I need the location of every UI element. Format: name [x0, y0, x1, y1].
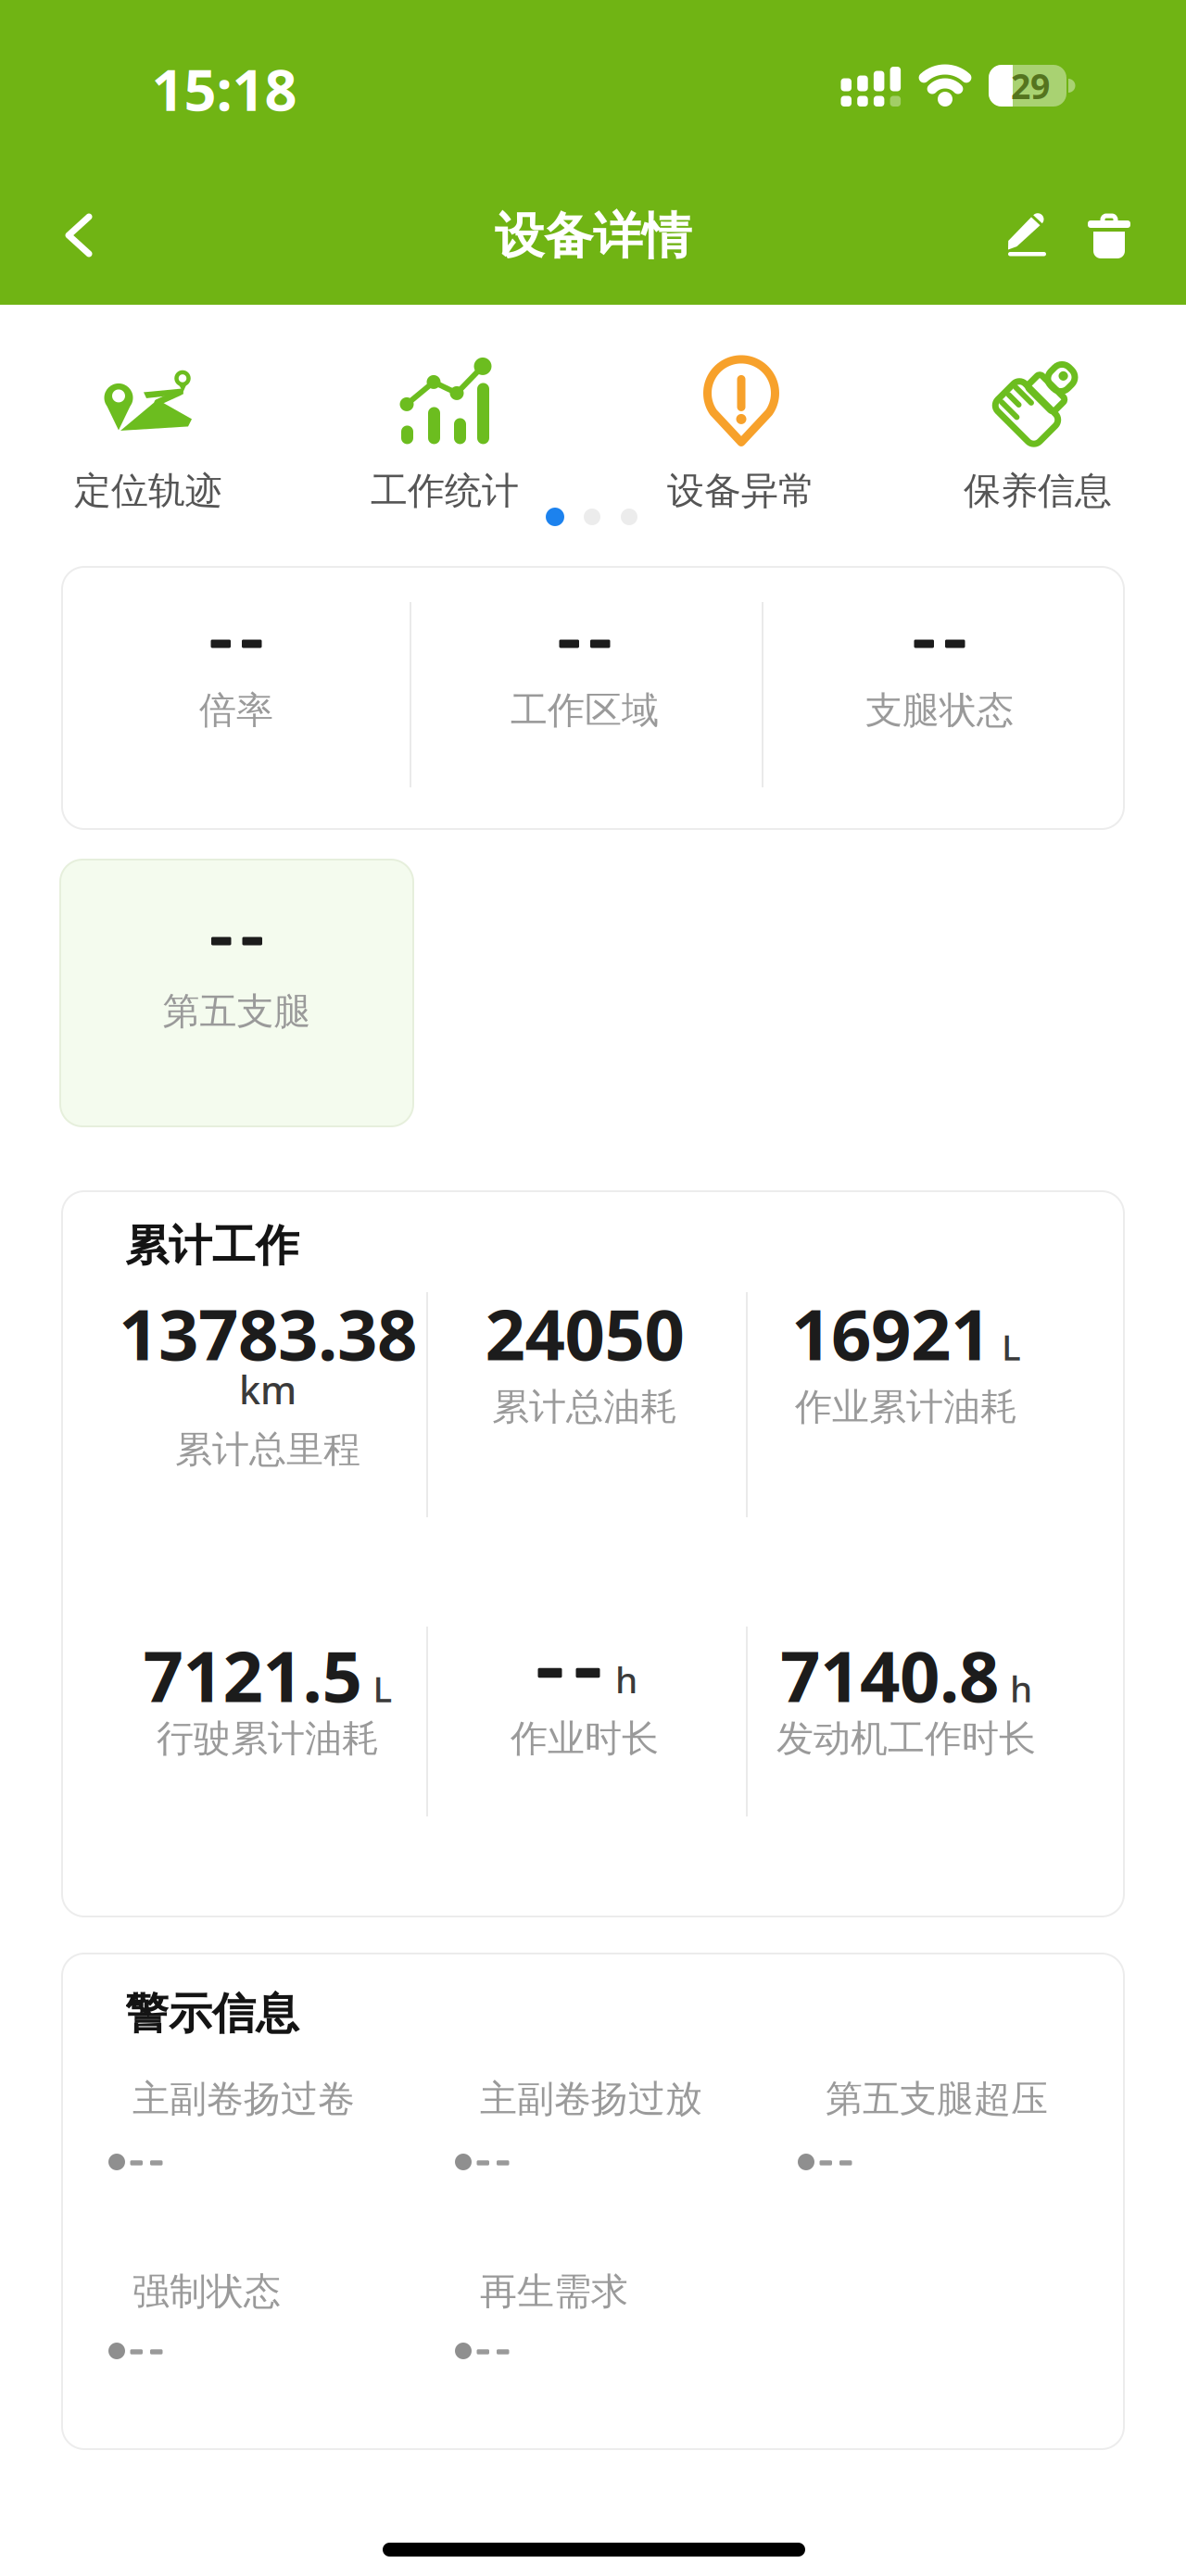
staticText: km [239, 1364, 296, 1415]
staticText: 设备异常 [667, 468, 815, 514]
staticText: 累计总里程 [175, 1427, 360, 1472]
staticText: 15:18 [151, 51, 297, 127]
staticText: L [1002, 1323, 1021, 1370]
staticText: h [615, 1656, 637, 1703]
staticText: 13783.38 [119, 1286, 417, 1380]
staticText: 第五支腿超压 [826, 2076, 1048, 2122]
button[interactable]: Edit [1001, 208, 1056, 264]
staticText: 强制状态 [132, 2269, 281, 2314]
staticText: 7140.8 [780, 1628, 999, 1721]
staticText: h [1010, 1665, 1032, 1712]
staticText: 作业累计油耗 [795, 1384, 1017, 1430]
staticText: L [373, 1665, 392, 1712]
button[interactable]: Delete [1081, 208, 1137, 264]
staticText: 设备详情 [495, 206, 691, 266]
staticText: 作业时长 [511, 1716, 659, 1761]
staticText: 警示信息 [125, 1987, 299, 2040]
staticText: 工作统计 [371, 468, 519, 514]
staticText: 累计总油耗 [492, 1384, 677, 1430]
staticText: 7121.5 [143, 1628, 362, 1721]
staticText: 支腿状态 [865, 688, 1014, 733]
staticText: 主副卷扬过放 [480, 2076, 702, 2122]
staticText: 16921 [791, 1286, 990, 1380]
staticText: 累计工作 [125, 1219, 299, 1272]
staticText: 24050 [485, 1286, 684, 1380]
button[interactable]: 设备异常 [594, 355, 889, 514]
staticText: 工作区域 [511, 688, 659, 733]
staticText: 倍率 [199, 688, 273, 733]
button[interactable]: 保养信息 [890, 355, 1185, 514]
staticText: 第五支腿 [163, 989, 311, 1034]
button[interactable]: Back [46, 203, 111, 268]
staticText: 行驶累计油耗 [157, 1716, 379, 1761]
staticText: 发动机工作时长 [776, 1716, 1036, 1761]
staticText: 保养信息 [964, 468, 1112, 514]
button[interactable]: 工作统计 [297, 355, 592, 514]
staticText: 定位轨迹 [74, 468, 222, 514]
staticText: 主副卷扬过卷 [132, 2076, 355, 2122]
staticText: 29 [1011, 63, 1050, 109]
staticText: 再生需求 [480, 2269, 628, 2314]
button[interactable]: 定位轨迹 [1, 355, 296, 514]
